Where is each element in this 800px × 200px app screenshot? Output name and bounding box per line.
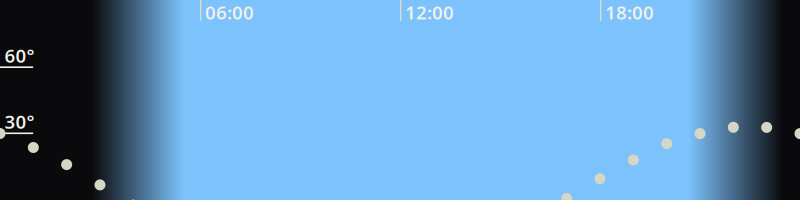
staticText: 30° [5,109,35,134]
staticText: 12:00 [405,0,454,25]
staticText: 60° [5,43,35,68]
staticText: 06:00 [205,0,254,25]
staticText: 18:00 [605,0,654,25]
